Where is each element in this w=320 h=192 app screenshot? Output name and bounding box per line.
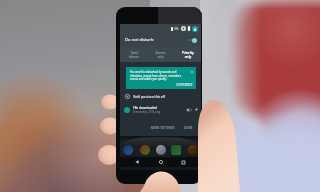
button[interactable]: Alarms only [147, 47, 174, 62]
button[interactable]: MORE SETTINGS [149, 124, 177, 132]
button[interactable]: You won't be disturbed by sounds and vib… [126, 67, 196, 89]
button[interactable]: Recent apps [178, 157, 188, 167]
button[interactable]: Back [132, 157, 142, 167]
button[interactable]: Dismiss [190, 70, 194, 74]
staticText: DONE [184, 126, 193, 130]
staticText: CUSTOMIZE [176, 83, 193, 87]
button[interactable]: App [123, 145, 133, 155]
staticText: You won't be disturbed by sounds and vib… [130, 70, 182, 81]
staticText: 5% [174, 27, 179, 31]
button[interactable]: Total silence [120, 47, 147, 62]
button[interactable]: App [140, 145, 150, 155]
staticText: Do not disturb [125, 37, 154, 43]
staticText: A [194, 27, 197, 32]
button[interactable]: CUSTOMIZE [173, 81, 196, 89]
button[interactable]: Until you turn this off [120, 91, 201, 102]
button[interactable]: File downloaded [120, 102, 201, 117]
button[interactable]: Home [156, 157, 166, 167]
staticText: Alarms only [155, 51, 166, 59]
button[interactable]: App [156, 145, 166, 155]
button[interactable]: Expand [195, 108, 198, 111]
staticText: Until you turn this off [133, 95, 165, 99]
staticText: Screenshot_2016.png [133, 110, 161, 114]
button[interactable]: Do not disturb toggle [187, 37, 197, 43]
staticText: MORE SETTINGS [151, 126, 175, 130]
button[interactable]: App [188, 145, 198, 155]
staticText: Total silence [129, 51, 139, 59]
button[interactable]: App [171, 145, 181, 155]
staticText: File downloaded [133, 106, 158, 110]
button[interactable]: Snooze [186, 108, 192, 112]
button[interactable]: Priority only [174, 47, 201, 62]
staticText: Priority only [182, 51, 194, 59]
button[interactable]: DONE [182, 124, 195, 132]
